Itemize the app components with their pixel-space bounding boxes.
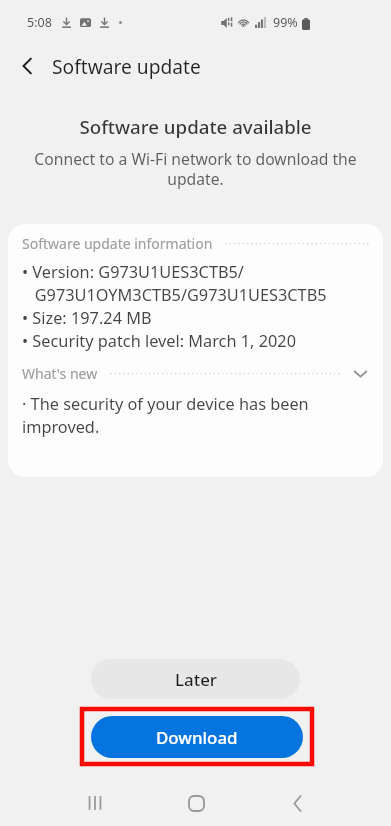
staticText: Software update bbox=[52, 53, 201, 79]
button[interactable]: Download bbox=[91, 716, 303, 758]
staticText: 5:08 bbox=[27, 14, 52, 31]
staticText: 99% bbox=[273, 14, 298, 31]
staticText: Connect to a Wi-Fi network to download t… bbox=[34, 148, 357, 190]
staticText: Software update available bbox=[0, 114, 391, 139]
button[interactable]: Back bbox=[268, 778, 328, 826]
button[interactable]: Later bbox=[91, 659, 300, 699]
staticText: Download bbox=[156, 726, 238, 749]
staticText: • Version: G973U1UES3CTB5/ bbox=[22, 261, 244, 284]
button[interactable]: Home bbox=[166, 778, 226, 826]
staticText: Software update information bbox=[22, 234, 213, 252]
staticText: G973U1OYM3CTB5/G973U1UES3CTB5 bbox=[22, 284, 327, 307]
staticText: improved. bbox=[22, 416, 100, 439]
staticText: What's new bbox=[22, 364, 98, 382]
button[interactable]: Back bbox=[9, 47, 47, 85]
staticText: • Security patch level: March 1, 2020 bbox=[22, 330, 296, 353]
staticText: Later bbox=[175, 668, 217, 691]
button[interactable]: What's new bbox=[22, 364, 369, 382]
staticText: • Size: 197.24 MB bbox=[22, 307, 152, 330]
button[interactable]: Recents bbox=[65, 778, 125, 826]
staticText: · The security of your device has been bbox=[22, 393, 309, 416]
